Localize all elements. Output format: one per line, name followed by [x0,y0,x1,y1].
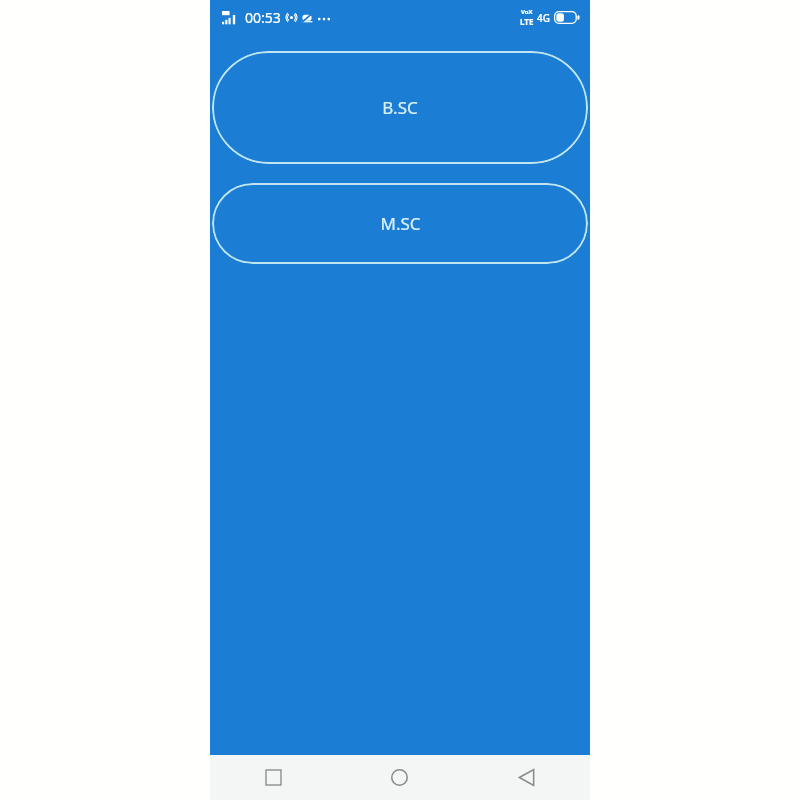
button[interactable]: Recent apps [210,755,336,800]
button[interactable]: B.SC [212,51,588,164]
staticText: M.SC [380,212,421,235]
staticText: VoX [521,8,533,16]
staticText: 00:53 [245,8,281,27]
staticText: B.SC [382,96,418,119]
staticText: 4G [537,11,550,25]
staticText: LTE [520,16,534,27]
button[interactable]: M.SC [212,183,588,264]
button[interactable]: Home [336,755,463,800]
button[interactable]: Back [463,755,590,800]
